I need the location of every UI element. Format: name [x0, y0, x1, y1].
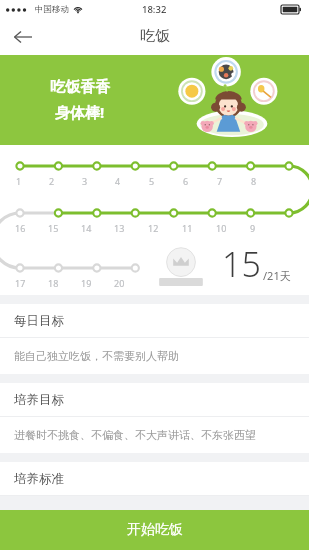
staticText: 2	[49, 175, 55, 187]
staticText: 15	[222, 241, 261, 287]
button[interactable]: 每日目标	[0, 304, 309, 374]
staticText: 每日目标	[14, 313, 64, 329]
staticText: 3	[82, 175, 88, 187]
staticText: 11	[182, 222, 193, 234]
button[interactable]: Back	[6, 20, 40, 54]
staticText: 12	[148, 222, 159, 234]
staticText: 17	[15, 277, 26, 289]
staticText: 5	[149, 175, 155, 187]
staticText: 培养标准	[14, 471, 64, 487]
staticText: 培养目标	[14, 392, 64, 408]
staticText: 15	[48, 222, 59, 234]
staticText: 16	[15, 222, 26, 234]
staticText: 9	[250, 222, 256, 234]
staticText: 7	[217, 175, 223, 187]
staticText: 18:32	[142, 3, 167, 16]
staticText: 20	[114, 277, 125, 289]
staticText: 13	[114, 222, 125, 234]
staticText: 1	[16, 175, 22, 187]
staticText: 18	[48, 277, 59, 289]
staticText: 能自己独立吃饭，不需要别人帮助	[14, 349, 179, 363]
staticText: 开始吃饭	[127, 521, 183, 539]
staticText: 身体棒!	[55, 102, 105, 122]
button[interactable]: 培养目标	[0, 383, 309, 453]
staticText: 吃饭香香	[50, 78, 110, 97]
staticText: 19	[81, 277, 92, 289]
staticText: 8	[251, 175, 257, 187]
staticText: 10	[216, 222, 227, 234]
button[interactable]: 培养标准	[0, 462, 309, 496]
staticText: 6	[183, 175, 189, 187]
staticText: 4	[115, 175, 121, 187]
staticText: /21天	[263, 268, 291, 283]
staticText: 吃饭	[140, 27, 170, 46]
staticText: 14	[81, 222, 92, 234]
button[interactable]: 开始吃饭	[0, 510, 309, 550]
staticText: 中国移动	[35, 4, 69, 15]
staticText: 进餐时不挑食、不偏食、不大声讲话、不东张西望	[14, 428, 256, 442]
